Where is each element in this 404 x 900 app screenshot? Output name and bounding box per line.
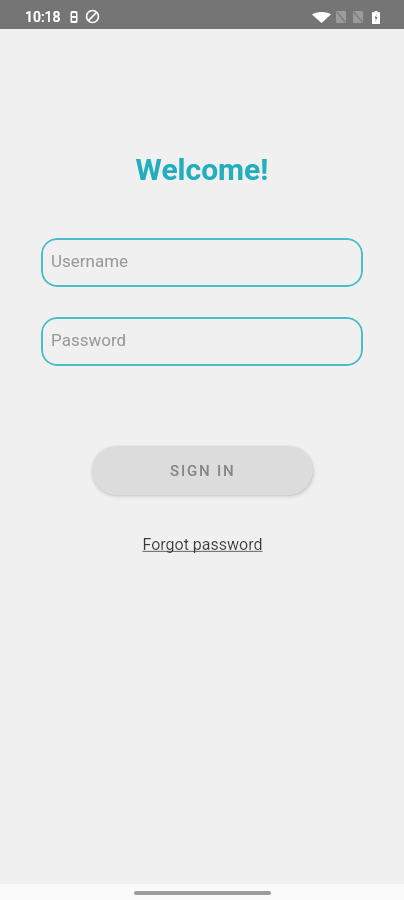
staticText: SIGN IN [170, 462, 236, 480]
staticText: Username [51, 251, 129, 271]
staticText: Password [51, 330, 127, 350]
button[interactable]: Password [41, 317, 363, 366]
button[interactable]: Username [41, 238, 363, 287]
staticText: 10:18 [25, 9, 61, 25]
button[interactable]: Forgot password [130, 527, 275, 562]
staticText: Welcome! [0, 152, 404, 187]
staticText: Forgot password [142, 535, 263, 554]
button[interactable]: SIGN IN [92, 446, 313, 495]
